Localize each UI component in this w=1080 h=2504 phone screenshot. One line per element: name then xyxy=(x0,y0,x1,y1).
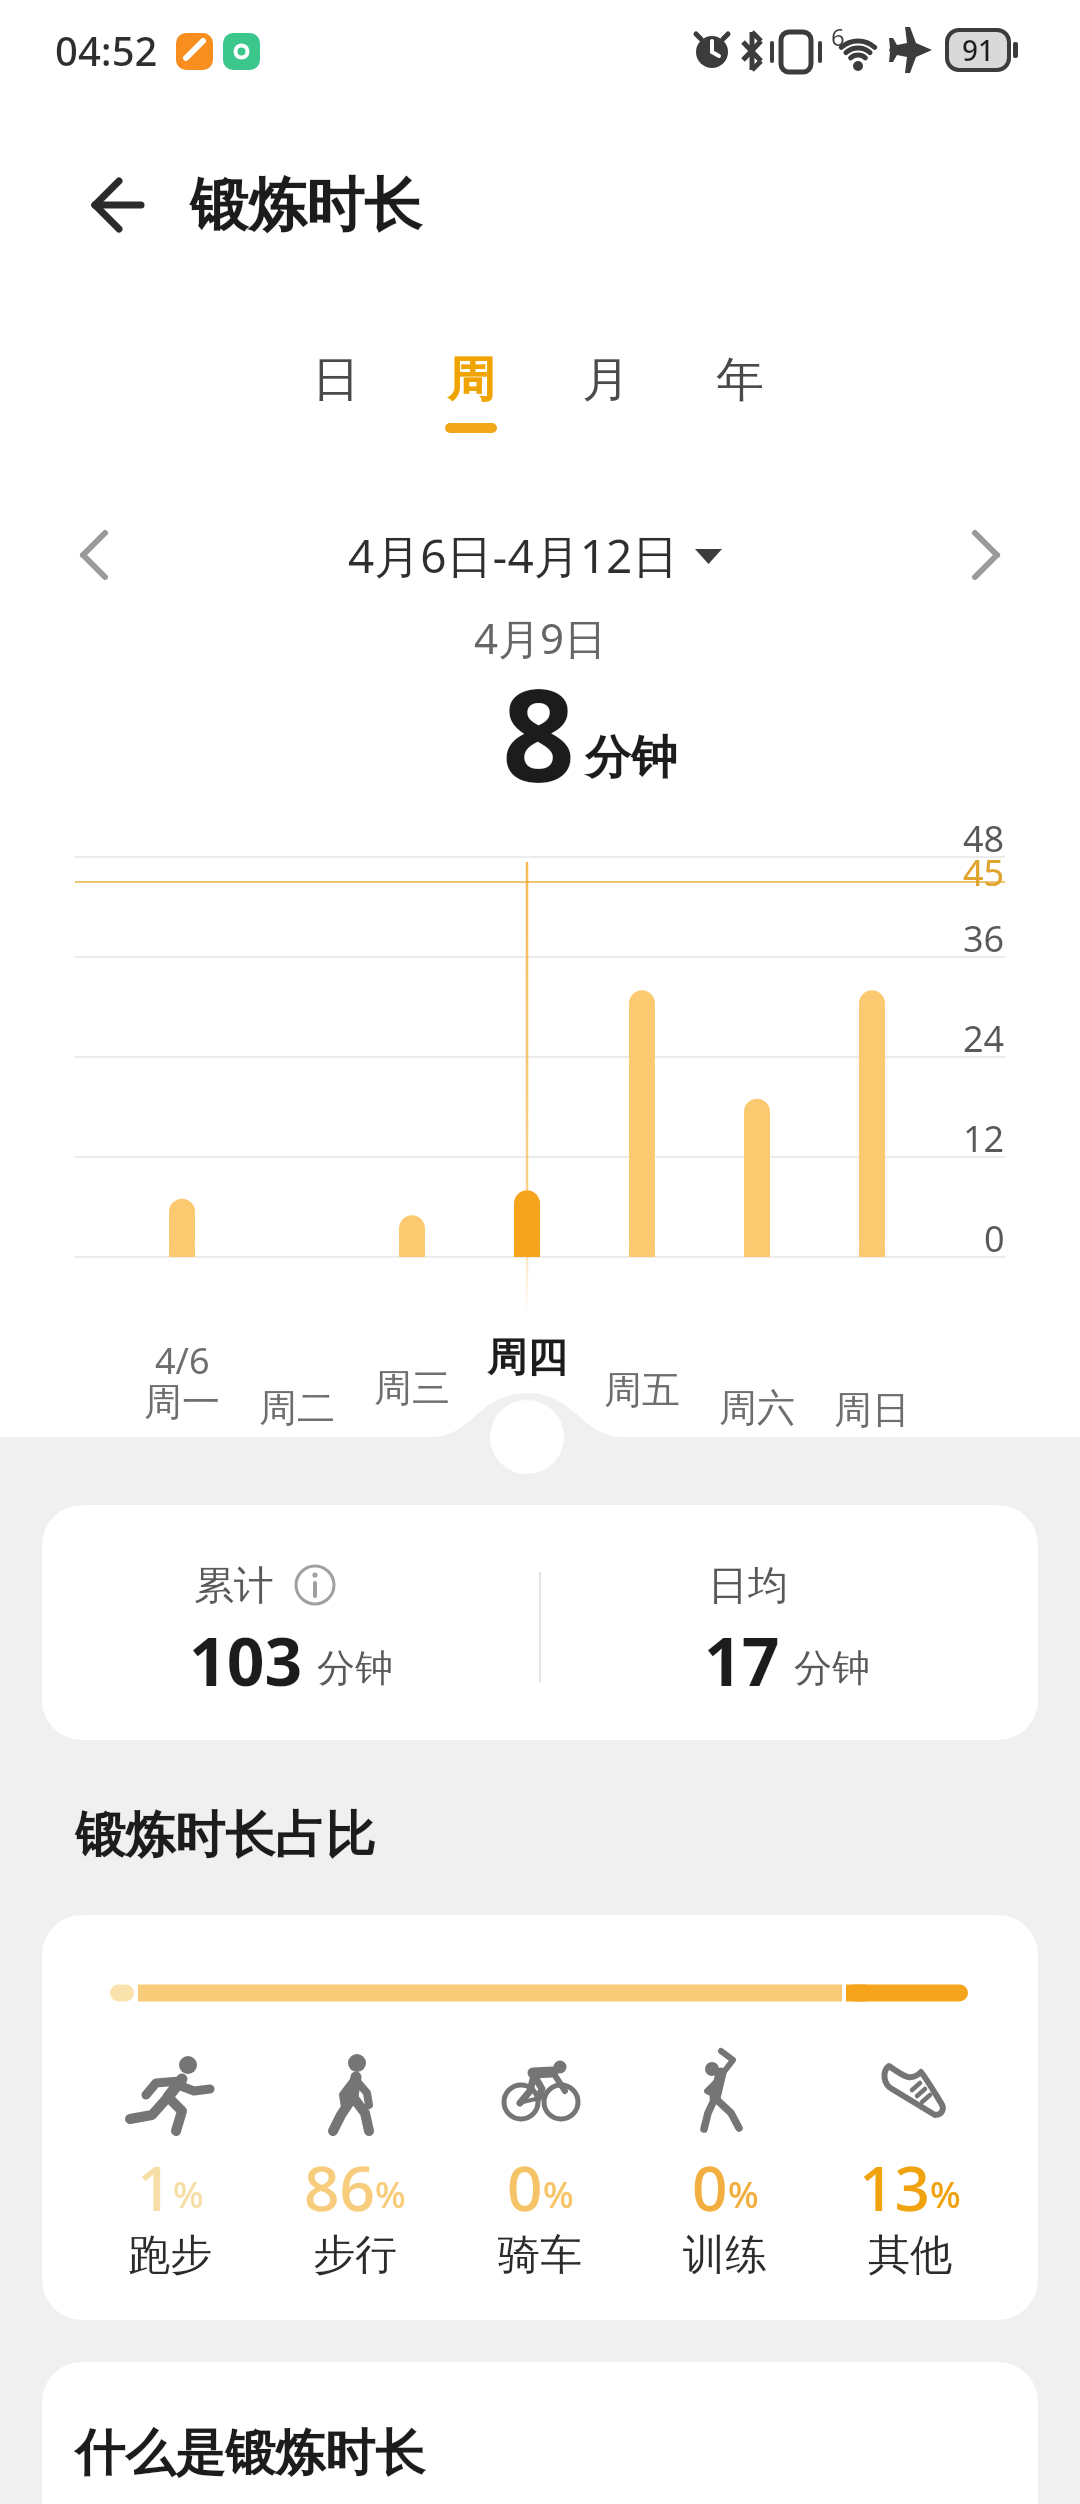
staticText: 17 xyxy=(704,1615,780,1700)
staticText: 训练 xyxy=(683,2229,767,2282)
staticText: 36 xyxy=(963,914,1005,963)
staticText: 年 xyxy=(716,350,764,410)
staticText: % xyxy=(728,2170,759,2219)
staticText: 周三 xyxy=(374,1364,450,1412)
staticText: 4月9日 xyxy=(474,609,607,666)
staticText: 24 xyxy=(963,1014,1005,1063)
button[interactable]: 月 xyxy=(556,340,656,420)
staticText: 周二 xyxy=(259,1384,335,1432)
staticText: 日均 xyxy=(708,1560,788,1610)
button[interactable]: 什么是锻炼时长 xyxy=(42,2362,1038,2504)
staticText: 48 xyxy=(963,814,1005,863)
staticText: % xyxy=(543,2170,574,2219)
staticText: 4/6 xyxy=(155,1336,210,1385)
staticText: 周一 xyxy=(144,1378,220,1426)
staticText: 其他 xyxy=(868,2229,952,2282)
staticText: 6 xyxy=(831,20,845,53)
button[interactable]: 4月6日-4月12日 xyxy=(0,515,1080,595)
staticText: 0 xyxy=(507,2145,543,2225)
staticText: 月 xyxy=(582,350,630,410)
staticText: 分钟 xyxy=(317,1644,393,1692)
staticText: 12 xyxy=(963,1114,1005,1163)
staticText: 分钟 xyxy=(585,729,677,787)
button[interactable]: 周 xyxy=(421,340,521,420)
staticText: 骑车 xyxy=(498,2229,582,2282)
staticText: 周日 xyxy=(834,1386,910,1434)
staticText: 什么是锻炼时长 xyxy=(75,2422,425,2485)
staticText: 04:52 xyxy=(55,23,158,77)
staticText: 86 xyxy=(304,2145,375,2225)
staticText: 累计 xyxy=(194,1560,274,1610)
staticText: 周四 xyxy=(487,1332,567,1382)
staticText: % xyxy=(930,2170,961,2219)
staticText: 步行 xyxy=(313,2229,397,2282)
staticText: 45 xyxy=(963,848,1005,897)
staticText: 周五 xyxy=(604,1366,680,1414)
staticText: 0 xyxy=(984,1214,1005,1263)
staticText: 周 xyxy=(447,350,495,410)
button[interactable]: 日 xyxy=(286,340,386,420)
staticText: 8 xyxy=(502,645,576,819)
staticText: 1 xyxy=(137,2145,173,2225)
staticText: 周六 xyxy=(719,1384,795,1432)
staticText: 锻炼时长占比 xyxy=(75,1804,375,1867)
staticText: 4月6日-4月12日 xyxy=(348,524,679,587)
staticText: 分钟 xyxy=(794,1644,870,1692)
staticText: % xyxy=(173,2170,204,2219)
staticText: % xyxy=(375,2170,406,2219)
button[interactable] xyxy=(60,160,150,250)
button[interactable]: 年 xyxy=(690,340,790,420)
staticText: 日 xyxy=(312,350,360,410)
staticText: 锻炼时长 xyxy=(190,169,422,242)
staticText: 91 xyxy=(962,31,995,69)
staticText: 0 xyxy=(692,2145,728,2225)
staticText: 13 xyxy=(859,2145,930,2225)
staticText: 103 xyxy=(189,1615,303,1700)
staticText: 跑步 xyxy=(128,2229,212,2282)
